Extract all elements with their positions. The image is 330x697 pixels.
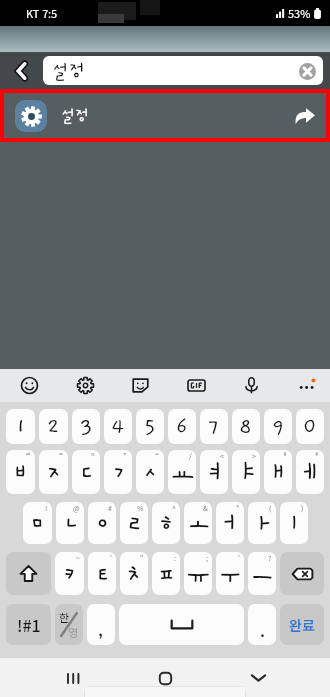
button[interactable]: . [248,604,276,645]
staticText: 0 [303,415,317,439]
button[interactable]: Language [55,604,83,645]
staticText: ㅣ [282,508,307,538]
button[interactable]: GIF [179,369,213,402]
button[interactable]: ㅑ [232,450,260,494]
button[interactable]: ㅁ [23,502,52,544]
button[interactable]: ㅌ [88,552,116,595]
staticText: ㅃ [25,451,31,458]
button[interactable]: More [290,369,324,402]
button[interactable]: Emoji [12,369,46,402]
button[interactable]: ㅔ [296,450,324,494]
button[interactable]: Keyboard settings [68,369,102,402]
button[interactable]: 8 [232,409,260,444]
staticText: / [189,451,192,461]
button[interactable]: Share [291,102,319,130]
staticText: 9 [272,415,285,439]
button[interactable]: 1 [6,409,35,444]
staticText: ㄲ [122,451,128,458]
button[interactable]: 7 [200,409,228,444]
staticText: ㄹ [122,508,147,538]
staticText: ' [238,553,240,563]
staticText: ㅍ [154,559,179,589]
button[interactable]: ㄴ [56,502,84,544]
button[interactable]: 0 [296,409,324,444]
button[interactable]: Hide keyboard [241,661,275,695]
staticText: 7 [208,415,220,439]
staticText: 1 [16,415,26,439]
button[interactable]: ㅎ [152,502,180,544]
button[interactable]: ㅜ [216,552,244,595]
button[interactable]: ㅂ [6,450,35,494]
button[interactable]: ㅈ [39,450,68,494]
staticText: ㅅ [138,457,163,487]
button[interactable]: Recent apps [55,661,89,695]
staticText: ㅖ [314,451,320,458]
staticText: 2 [47,415,60,439]
staticText: ) [301,503,304,513]
staticText: ; [206,553,208,563]
button[interactable]: 6 [168,409,196,444]
staticText: ㅏ [250,508,275,538]
staticText: ^ [172,503,176,513]
staticText: 8 [239,415,253,439]
staticText: ㅇ [90,508,115,538]
staticText: ㄷ [74,457,99,487]
button[interactable]: 설정 [43,56,323,85]
button[interactable]: ㄱ [104,450,132,494]
button[interactable]: Shift [6,552,51,595]
staticText: ㅎ [154,508,179,538]
button[interactable]: Voice input [234,369,268,402]
button[interactable]: !#1 [6,604,51,645]
staticText: ㅂ [8,457,33,487]
button[interactable]: ㅓ [216,502,244,544]
button[interactable]: ㅋ [55,552,84,595]
staticText: ! [45,503,48,513]
staticText: ㄸ [90,451,96,458]
staticText: 설정 [52,61,85,81]
button[interactable]: ㅍ [152,552,180,595]
button[interactable]: ㅗ [184,502,212,544]
button[interactable]: ㄹ [120,502,148,544]
staticText: ㅊ [122,559,147,589]
button[interactable]: ㅕ [200,450,228,494]
button[interactable]: ㅊ [120,552,148,595]
button[interactable]: 설정 [4,93,326,138]
staticText: ㅛ [170,457,195,487]
button[interactable]: ㅣ [280,502,308,544]
staticText: ㅐ [266,457,291,487]
button[interactable]: Space [119,604,244,645]
button[interactable]: ㅡ [248,552,276,595]
button[interactable]: 4 [104,409,132,444]
button[interactable]: Home [148,661,182,695]
button[interactable]: Clear text [298,62,316,80]
staticText: !#1 [17,613,41,636]
staticText: * [236,503,240,513]
button[interactable]: 5 [136,409,164,444]
button[interactable]: 완료 [280,604,324,645]
staticText: ' [110,553,112,563]
staticText: ( [269,503,272,513]
button[interactable]: Backspace [280,552,324,595]
button[interactable]: ㅛ [168,450,196,494]
button[interactable]: Back [0,52,43,89]
button[interactable]: 2 [39,409,68,444]
button[interactable]: ㅇ [88,502,116,544]
button[interactable]: ㄷ [72,450,100,494]
staticText: ㅓ [218,508,243,538]
staticText: # [108,503,112,513]
staticText: 완료 [289,615,315,635]
button[interactable]: 3 [72,409,100,444]
staticText: ㅜ [218,559,243,589]
button[interactable]: ㅠ [184,552,212,595]
button[interactable]: ㅅ [136,450,164,494]
staticText: 5 [144,415,156,439]
staticText: ㅆ [154,451,160,458]
button[interactable]: ㅏ [248,502,276,544]
button[interactable]: 9 [264,409,292,444]
button[interactable]: ㅐ [264,450,292,494]
staticText: ~ [76,553,80,563]
button[interactable]: Stickers [123,369,157,402]
staticText: ㄱ [106,457,131,487]
button[interactable]: , [87,604,115,645]
staticText: ㅋ [57,559,82,589]
